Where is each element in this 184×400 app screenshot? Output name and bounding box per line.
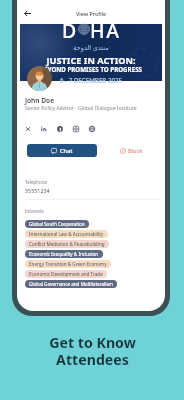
button[interactable]: X xyxy=(20,121,36,137)
staticText: Energy Transition & Green Economy xyxy=(29,261,107,267)
staticText: Interests xyxy=(25,208,44,214)
staticText: JUSTICE IN ACTION: xyxy=(20,54,162,67)
staticText: منتدى الدوحة xyxy=(20,43,162,52)
staticText: Conflict Mediation & Peacebuilding xyxy=(29,241,105,247)
staticText: 55551234 xyxy=(25,187,50,194)
button[interactable]: Block xyxy=(120,144,143,157)
staticText: BEYOND PROMISES TO PROGRESS xyxy=(20,65,162,73)
staticText: Get to Know Attendees xyxy=(49,333,136,369)
staticText: View Profile xyxy=(17,10,165,17)
button[interactable]: Global South Cooperation xyxy=(25,220,89,228)
staticText: Chat xyxy=(60,147,73,155)
button[interactable]: Chat xyxy=(27,144,97,157)
staticText: Global South Cooperation xyxy=(29,221,85,227)
button[interactable]: Facebook xyxy=(52,121,68,137)
button[interactable]: International Law & Accountability xyxy=(25,230,108,238)
button[interactable]: Conflict Mediation & Peacebuilding xyxy=(25,240,109,248)
button[interactable]: Instagram xyxy=(68,121,84,137)
staticText: John Doe xyxy=(25,96,54,105)
button[interactable]: Global Governance and Multilateralism xyxy=(25,280,117,288)
button[interactable]: Economic Development and Trade xyxy=(25,270,107,278)
button[interactable]: Energy Transition & Green Economy xyxy=(25,260,111,268)
staticText: Global Governance and Multilateralism xyxy=(29,281,113,287)
staticText: Economic Development and Trade xyxy=(29,271,103,277)
staticText: Senior Policy Advisor - Global Dialogue … xyxy=(25,105,137,112)
button[interactable]: Economic Inequality & Inclusion xyxy=(25,250,103,258)
staticText: Economic Inequality & Inclusion xyxy=(29,251,99,257)
button[interactable]: Back xyxy=(20,6,35,21)
button[interactable]: LinkedIn xyxy=(36,121,52,137)
button[interactable]: Website xyxy=(84,121,100,137)
staticText: D xyxy=(62,17,78,44)
staticText: International Law & Accountability xyxy=(29,231,104,237)
staticText: Block xyxy=(128,147,143,155)
staticText: HA xyxy=(90,17,121,44)
staticText: 6 - 7 DECEMBER 2025 xyxy=(20,76,162,84)
staticText: Telephone xyxy=(25,179,48,185)
